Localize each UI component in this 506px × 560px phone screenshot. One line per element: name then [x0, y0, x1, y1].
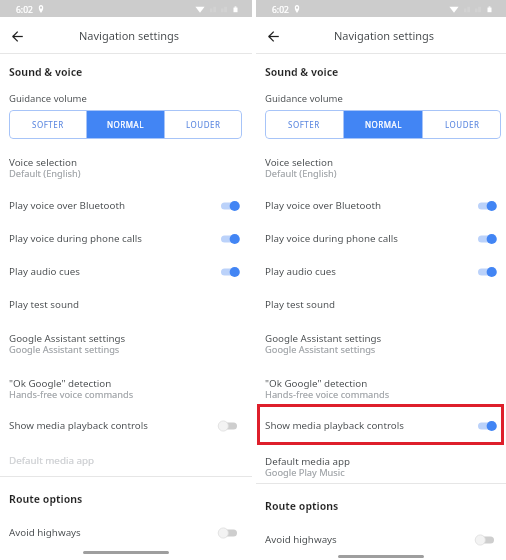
staticText: Sound & voice — [265, 65, 339, 79]
staticText: Navigation settings — [334, 28, 435, 43]
staticText: Play test sound — [9, 298, 237, 311]
staticText: Route options — [9, 492, 83, 506]
staticText: Google Assistant settings — [265, 343, 376, 356]
staticText: Navigation settings — [79, 28, 180, 43]
staticText: Play voice during phone calls — [9, 232, 217, 245]
staticText: Default media app — [265, 455, 351, 468]
staticText: Show media playback controls — [265, 419, 474, 432]
button[interactable]: Play audio cues — [0, 256, 252, 287]
staticText: Google Assistant settings — [9, 343, 120, 356]
button[interactable]: Play voice over Bluetooth — [0, 190, 252, 221]
staticText: NORMAL — [365, 119, 402, 130]
staticText: Hands-free voice commands — [265, 388, 390, 401]
staticText: LOUDER — [186, 119, 221, 130]
button[interactable]: "Ok Google" detection — [0, 368, 252, 406]
staticText: Play voice during phone calls — [265, 232, 474, 245]
staticText: SOFTER — [32, 119, 64, 130]
button[interactable]: NORMAL — [87, 110, 164, 139]
staticText: Play test sound — [265, 298, 494, 311]
button[interactable]: Avoid highways — [0, 517, 252, 548]
button[interactable]: Voice selection — [256, 147, 506, 185]
staticText: Google Play Music — [265, 466, 345, 479]
staticText: Default media app — [9, 454, 95, 467]
staticText: Play voice over Bluetooth — [9, 199, 217, 212]
button[interactable]: Avoid highways — [256, 524, 506, 555]
button[interactable]: Play voice during phone calls — [0, 223, 252, 254]
button[interactable]: SOFTER — [265, 110, 343, 139]
staticText: 6:02 — [272, 4, 289, 16]
staticText: Voice selection — [265, 156, 333, 169]
button[interactable]: Play test sound — [0, 289, 252, 320]
button[interactable]: LOUDER — [165, 110, 242, 139]
button[interactable]: Back — [6, 25, 28, 47]
button[interactable]: Show media playback controls — [0, 410, 252, 441]
staticText: NORMAL — [107, 119, 144, 130]
staticText: Default (English) — [9, 167, 81, 180]
button[interactable]: Play test sound — [256, 289, 506, 320]
button[interactable]: Google Assistant settings — [256, 323, 506, 361]
staticText: Play voice over Bluetooth — [265, 199, 474, 212]
staticText: Sound & voice — [9, 65, 83, 79]
button[interactable]: Play voice over Bluetooth — [256, 190, 506, 221]
staticText: Default (English) — [265, 167, 337, 180]
button[interactable]: Default media app — [256, 446, 506, 484]
staticText: Guidance volume — [265, 92, 343, 105]
button[interactable]: Play audio cues — [256, 256, 506, 287]
staticText: Avoid highways — [9, 526, 217, 539]
staticText: SOFTER — [288, 119, 320, 130]
staticText: Google Assistant settings — [265, 332, 382, 345]
button[interactable]: Voice selection — [0, 147, 252, 185]
staticText: LOUDER — [445, 119, 480, 130]
staticText: 6:02 — [16, 4, 33, 16]
button[interactable]: Show media playback controls — [256, 410, 506, 441]
staticText: Route options — [265, 499, 339, 513]
staticText: Voice selection — [9, 156, 77, 169]
button[interactable]: Google Assistant settings — [0, 323, 252, 361]
staticText: Avoid highways — [265, 533, 474, 546]
staticText: Play audio cues — [265, 265, 474, 278]
button[interactable]: Play voice during phone calls — [256, 223, 506, 254]
staticText: "Ok Google" detection — [265, 377, 368, 390]
button[interactable]: LOUDER — [423, 110, 501, 139]
staticText: "Ok Google" detection — [9, 377, 112, 390]
staticText: Google Assistant settings — [9, 332, 126, 345]
staticText: Show media playback controls — [9, 419, 217, 432]
button[interactable]: Back — [262, 25, 284, 47]
button[interactable]: SOFTER — [9, 110, 86, 139]
staticText: Play audio cues — [9, 265, 217, 278]
button[interactable]: NORMAL — [344, 110, 422, 139]
staticText: Hands-free voice commands — [9, 388, 134, 401]
staticText: Guidance volume — [9, 92, 87, 105]
button[interactable]: "Ok Google" detection — [256, 368, 506, 406]
